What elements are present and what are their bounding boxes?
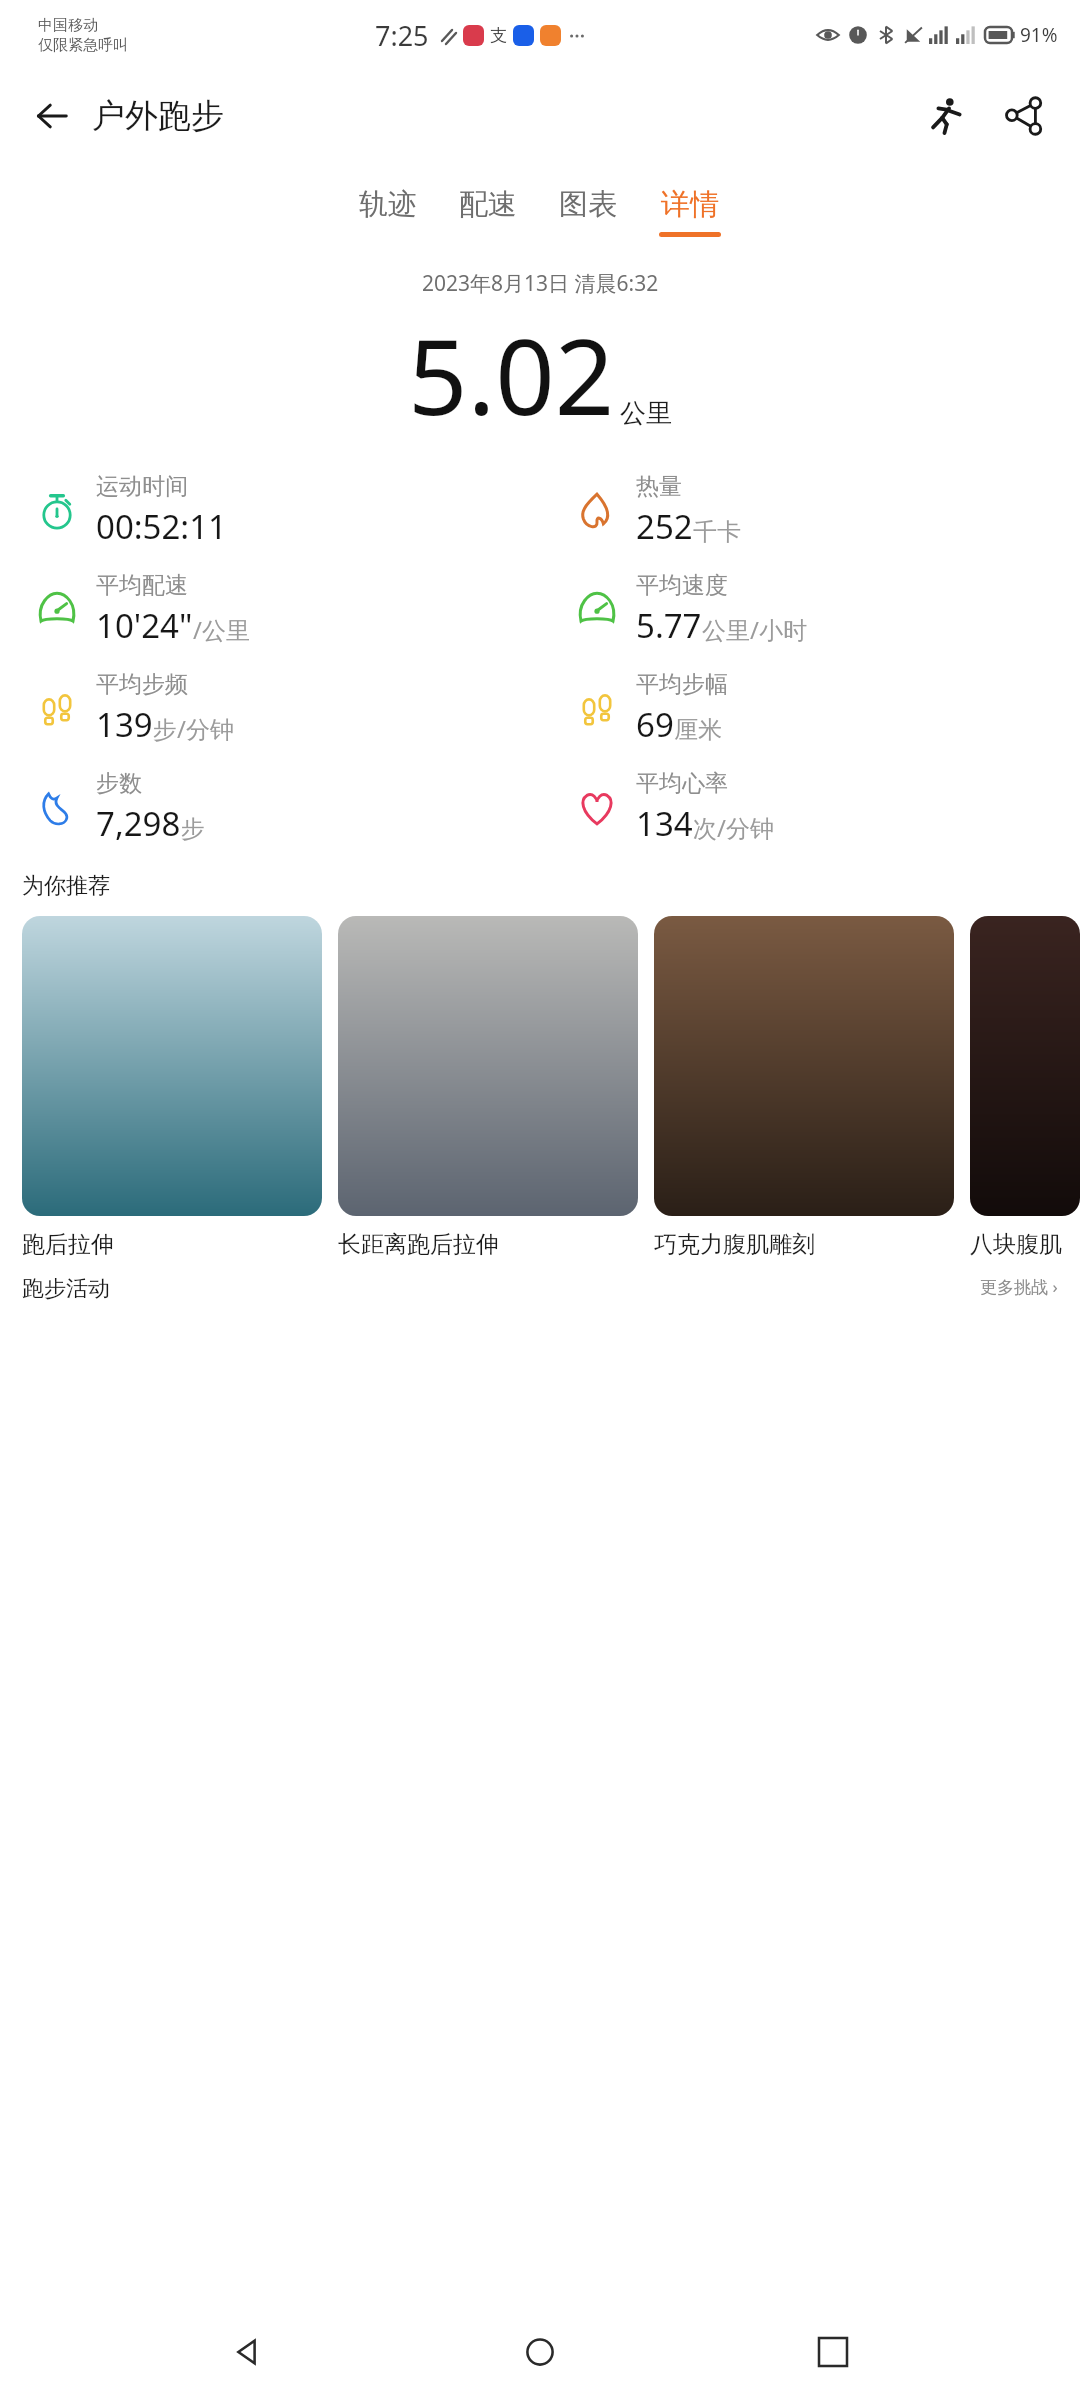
staticText: 配速 (459, 186, 517, 223)
button[interactable]: 跑后拉伸 (22, 916, 322, 1259)
button[interactable]: 平均步幅 (540, 670, 1080, 747)
staticText: 7:25 (375, 17, 429, 54)
button[interactable]: Recents (788, 2307, 878, 2397)
button[interactable]: Back (24, 88, 80, 144)
button[interactable]: Runner (916, 86, 976, 146)
staticText: 次/分钟 (693, 811, 774, 844)
staticText: 跑后拉伸 (22, 1230, 114, 1259)
staticText: 八块腹肌 (970, 1230, 1062, 1259)
staticText: 户外跑步 (92, 95, 224, 137)
staticText: /公里 (193, 613, 250, 646)
staticText: 5.02 (408, 304, 615, 446)
button[interactable]: 配速 (453, 184, 523, 239)
button[interactable]: 长距离跑后拉伸 (338, 916, 638, 1259)
button[interactable]: 运动时间 (0, 472, 540, 549)
staticText: 平均心率 (636, 769, 728, 798)
button[interactable]: 图表 (553, 184, 623, 239)
button[interactable]: Back (203, 2307, 293, 2397)
staticText: 2023年8月13日 清晨6:32 (422, 269, 659, 298)
staticText: 中国移动 (38, 16, 98, 35)
staticText: 跑步活动 (22, 1275, 110, 1303)
button[interactable]: 热量 (540, 472, 1080, 549)
staticText: 巧克力腹肌雕刻 (654, 1230, 815, 1259)
staticText: 步/分钟 (153, 712, 234, 745)
button[interactable]: 平均速度 (540, 571, 1080, 648)
button[interactable]: 详情 (653, 184, 727, 239)
staticText: 平均配速 (96, 571, 188, 600)
staticText: 仅限紧急呼叫 (38, 36, 128, 55)
button[interactable]: 轨迹 (353, 184, 423, 239)
staticText: 252 (636, 504, 693, 549)
staticText: 公里 (620, 397, 672, 430)
staticText: 134 (636, 801, 693, 846)
staticText: 厘米 (674, 715, 722, 745)
button[interactable]: 步数 (0, 769, 540, 846)
staticText: 69 (636, 702, 674, 747)
staticText: 详情 (661, 186, 719, 223)
staticText: 长距离跑后拉伸 (338, 1230, 499, 1259)
staticText: 00:52:11 (96, 504, 227, 549)
staticText: 为你推荐 (22, 872, 110, 900)
staticText: 公里/小时 (702, 613, 807, 646)
staticText: 更多挑战 › (980, 1275, 1058, 1298)
button[interactable]: Home (495, 2307, 585, 2397)
staticText: 7,298 (96, 801, 181, 846)
staticText: 平均步频 (96, 670, 188, 699)
staticText: 5.77 (636, 603, 702, 648)
staticText: 10'24" (96, 603, 193, 648)
button[interactable]: 八块腹肌 (970, 916, 1080, 1259)
button[interactable]: 平均配速 (0, 571, 540, 648)
staticText: 千卡 (693, 517, 741, 547)
staticText: 支 (490, 25, 507, 46)
staticText: 139 (96, 702, 153, 747)
staticText: 轨迹 (359, 186, 417, 223)
button[interactable]: 平均步频 (0, 670, 540, 747)
staticText: 步 (181, 814, 205, 844)
staticText: 平均速度 (636, 571, 728, 600)
staticText: 91% (1020, 22, 1058, 48)
button[interactable]: Share (994, 86, 1054, 146)
staticText: 平均步幅 (636, 670, 728, 699)
staticText: 热量 (636, 472, 682, 501)
button[interactable]: 巧克力腹肌雕刻 (654, 916, 954, 1259)
staticText: 步数 (96, 769, 142, 798)
staticText: 图表 (559, 186, 617, 223)
button[interactable]: 平均心率 (540, 769, 1080, 846)
staticText: 运动时间 (96, 472, 188, 501)
